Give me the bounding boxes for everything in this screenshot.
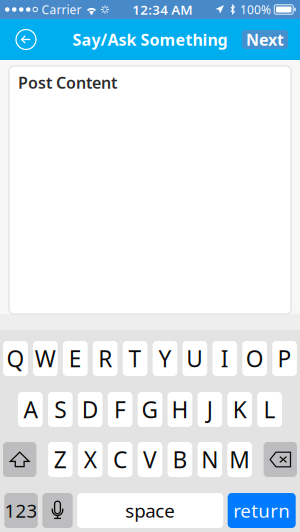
button[interactable]: Q (3, 341, 28, 376)
staticText: S (54, 394, 66, 424)
staticText: R (98, 343, 112, 373)
button[interactable]: N (197, 442, 222, 477)
staticText: O (246, 343, 264, 373)
button[interactable]: E (63, 341, 88, 376)
staticText: T (129, 343, 142, 373)
staticText: N (201, 444, 218, 474)
button[interactable]: Delete (264, 442, 297, 477)
staticText: J (207, 394, 213, 424)
button[interactable]: F (108, 392, 132, 427)
button[interactable]: X (78, 442, 103, 477)
staticText: L (264, 394, 276, 424)
staticText: space (125, 498, 175, 523)
button[interactable]: T (123, 341, 147, 376)
staticText: 123 (5, 498, 38, 523)
staticText: G (141, 394, 158, 424)
staticText: V (143, 444, 157, 474)
button[interactable]: J (197, 392, 222, 427)
button[interactable]: return (228, 493, 296, 528)
staticText: Next (246, 29, 284, 50)
staticText: Say/Ask Something (72, 29, 227, 50)
staticText: K (233, 394, 247, 424)
staticText: 12:34 AM (132, 1, 192, 18)
staticText: U (186, 343, 203, 373)
button[interactable]: U (182, 341, 207, 376)
button[interactable]: Back (6, 19, 46, 60)
staticText: W (35, 343, 56, 373)
staticText: B (172, 444, 187, 474)
staticText: A (23, 394, 37, 424)
button[interactable]: W (33, 341, 58, 376)
button[interactable]: V (138, 442, 162, 477)
button[interactable]: O (242, 341, 267, 376)
button[interactable]: Next (242, 30, 288, 49)
staticText: D (82, 394, 99, 424)
staticText: Z (54, 444, 67, 474)
staticText: X (84, 444, 97, 474)
button[interactable]: Shift (3, 442, 36, 477)
button[interactable]: Y (153, 341, 177, 376)
button[interactable]: space (77, 493, 223, 528)
button[interactable]: I (212, 341, 237, 376)
button[interactable]: L (257, 392, 282, 427)
staticText: Y (158, 343, 171, 373)
staticText: Q (6, 343, 24, 373)
button[interactable]: A (18, 392, 43, 427)
button[interactable]: P (272, 341, 297, 376)
staticText: I (221, 343, 229, 373)
staticText: E (69, 343, 82, 373)
button[interactable]: S (48, 392, 73, 427)
staticText: H (171, 394, 188, 424)
button[interactable]: 123 (4, 493, 38, 528)
staticText: Carrier (41, 1, 81, 17)
staticText: return (233, 498, 290, 523)
staticText: F (114, 394, 126, 424)
button[interactable]: B (168, 442, 192, 477)
staticText: 100% (240, 1, 271, 17)
staticText: P (278, 343, 292, 373)
button[interactable]: G (138, 392, 162, 427)
button[interactable]: Z (48, 442, 73, 477)
staticText: M (229, 444, 250, 474)
button[interactable]: D (78, 392, 103, 427)
button[interactable]: C (108, 442, 132, 477)
button[interactable]: R (93, 341, 117, 376)
button[interactable]: Dictate (42, 493, 73, 528)
button[interactable]: K (227, 392, 252, 427)
button[interactable]: H (168, 392, 192, 427)
staticText: C (113, 444, 127, 474)
button[interactable]: M (227, 442, 252, 477)
staticText: Post Content (18, 72, 117, 93)
